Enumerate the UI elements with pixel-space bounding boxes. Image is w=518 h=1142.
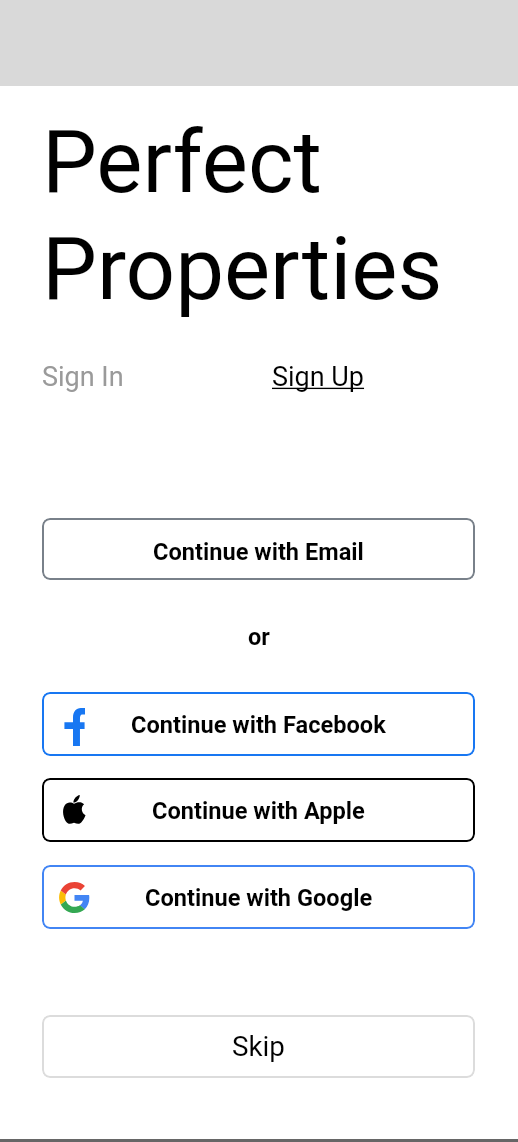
staticText: Perfect Properties bbox=[42, 111, 443, 320]
button[interactable]: Sign In bbox=[42, 361, 124, 393]
staticText: Skip bbox=[232, 1030, 285, 1063]
staticText: Continue with Apple bbox=[152, 797, 365, 825]
staticText: Continue with Facebook bbox=[131, 711, 386, 739]
button[interactable]: Google bbox=[42, 865, 475, 929]
button[interactable]: Facebook bbox=[42, 692, 475, 756]
button[interactable]: Continue with Email bbox=[42, 518, 475, 580]
button[interactable]: Skip bbox=[42, 1015, 475, 1078]
staticText: Sign Up bbox=[272, 361, 365, 393]
other: Google bbox=[59, 882, 90, 913]
other: Apple bbox=[62, 795, 86, 824]
other: Facebook bbox=[64, 708, 85, 746]
staticText: Continue with Google bbox=[145, 884, 373, 912]
button[interactable]: Apple bbox=[42, 778, 475, 842]
button[interactable]: Sign Up bbox=[272, 361, 365, 393]
staticText: Continue with Email bbox=[153, 538, 364, 566]
staticText: Sign In bbox=[42, 361, 124, 393]
staticText: or bbox=[248, 623, 270, 651]
